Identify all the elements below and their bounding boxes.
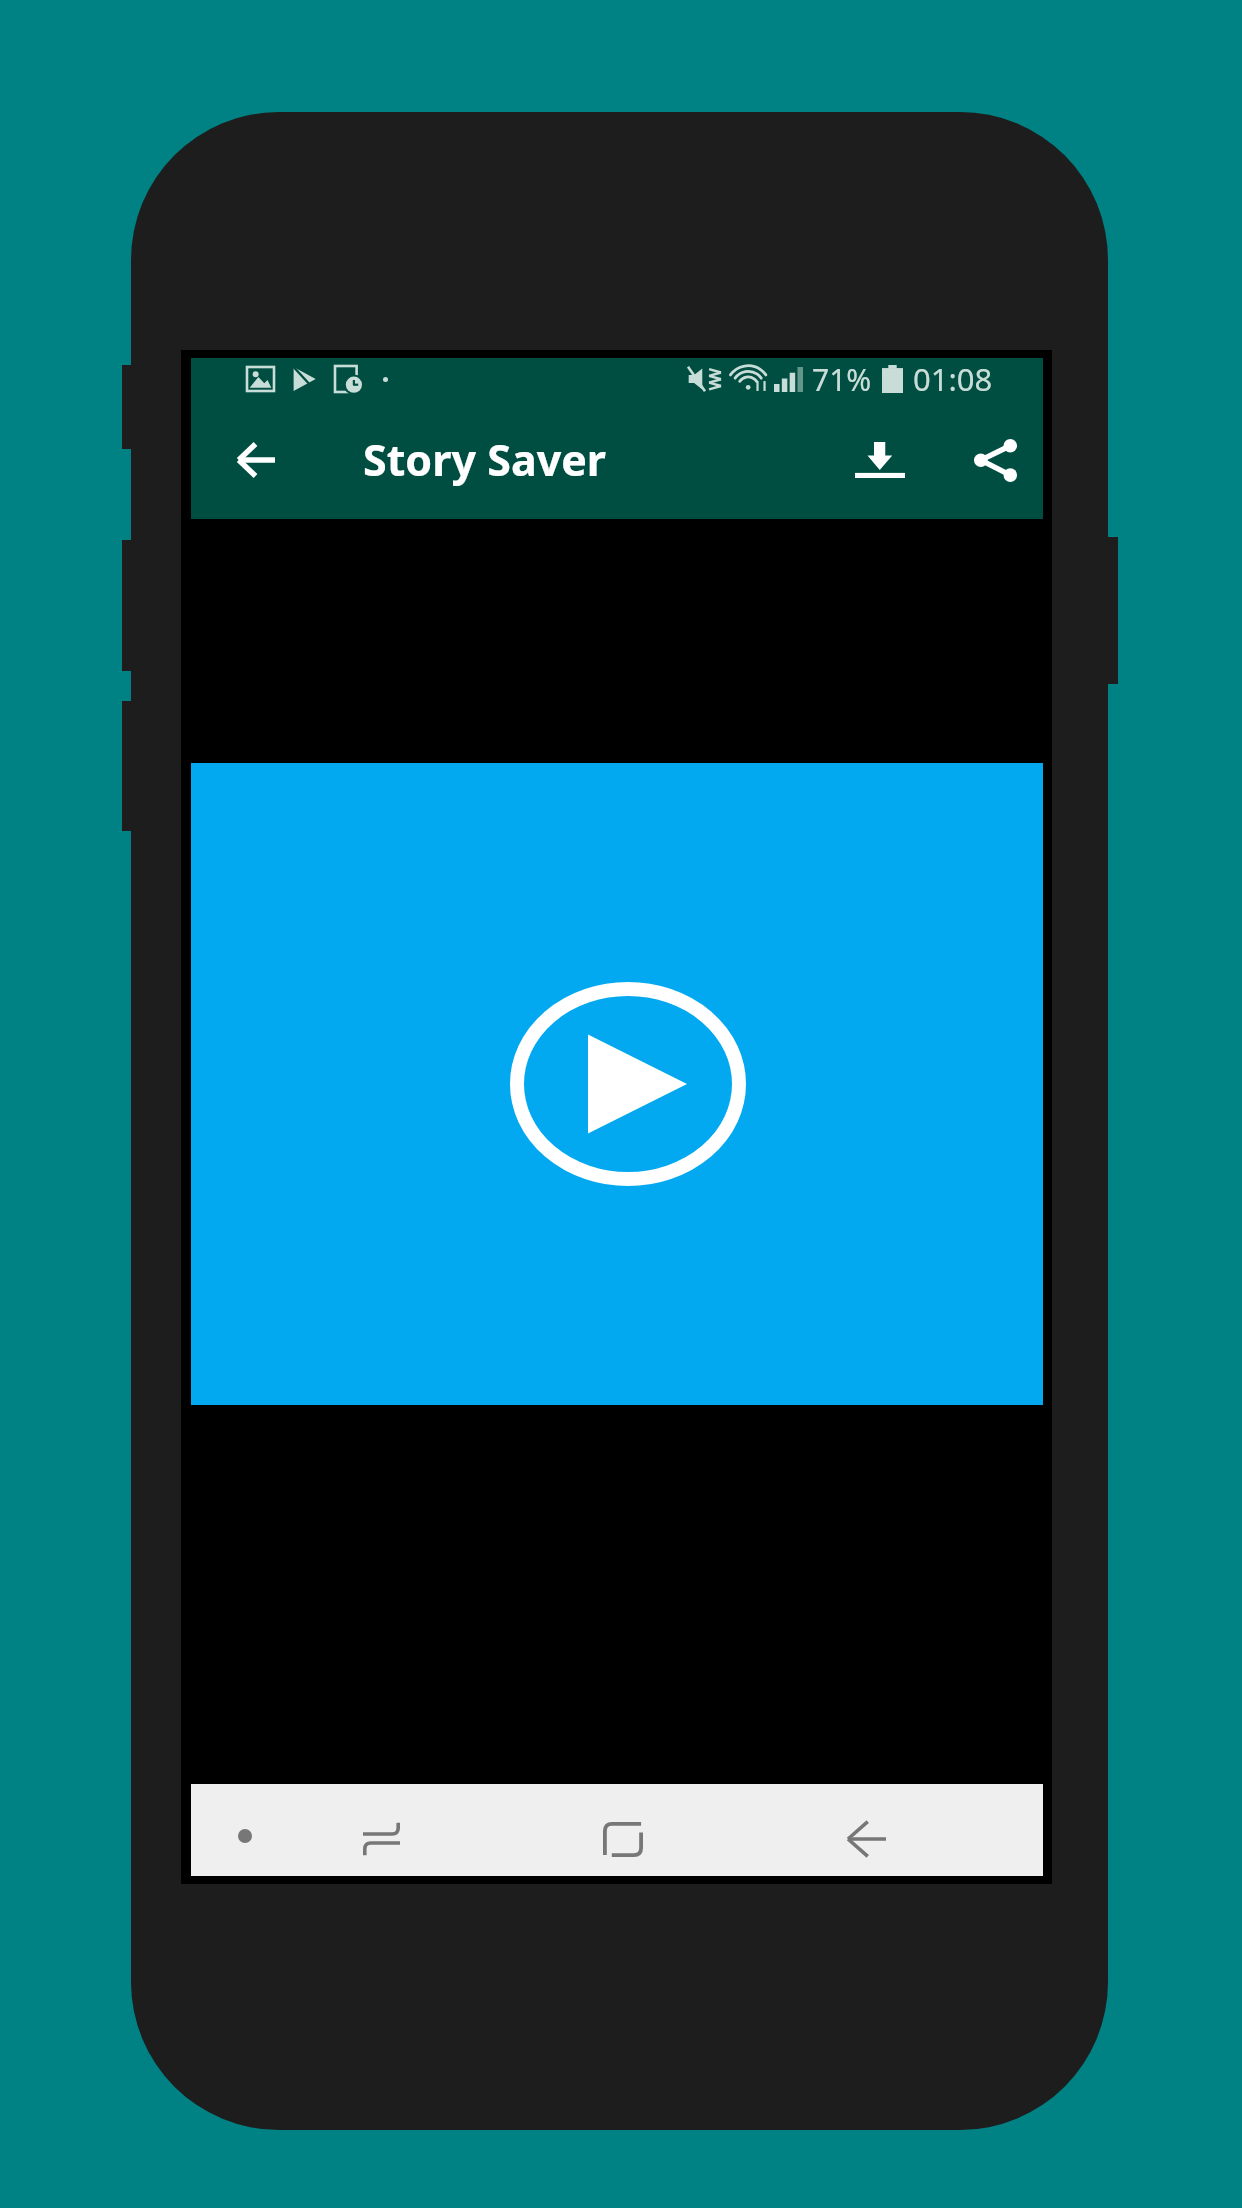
staticText: 01:08 — [913, 358, 993, 400]
button[interactable]: Share — [953, 418, 1037, 502]
button[interactable]: Recent apps — [345, 1803, 417, 1875]
button[interactable]: Back — [831, 1803, 903, 1875]
staticText: Story Saver — [363, 430, 607, 489]
staticText: 71% — [812, 359, 872, 400]
button[interactable]: Back — [213, 418, 297, 502]
button[interactable]: Play video — [510, 982, 746, 1186]
button[interactable]: Home — [587, 1803, 659, 1875]
button[interactable]: Download — [838, 418, 922, 502]
